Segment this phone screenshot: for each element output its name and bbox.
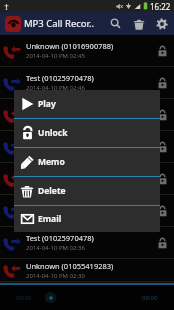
staticText: Unknown (01016900788) xyxy=(26,41,114,51)
staticText: 2014-04-10 PM 02:45 xyxy=(26,52,85,60)
button[interactable]: Delete xyxy=(14,177,160,205)
staticText: 2014-04-10 PM 02:45 xyxy=(26,116,85,124)
staticText: Email xyxy=(38,213,62,225)
staticText: Test (01025970478) xyxy=(26,201,94,211)
button[interactable]: Unlock xyxy=(14,119,160,147)
staticText: MP3 Call Recor.. xyxy=(24,17,95,30)
button[interactable]: Settings xyxy=(150,12,173,35)
staticText: Test (01025970478) xyxy=(26,233,94,243)
staticText: Unlock xyxy=(38,127,68,139)
staticText: 2014-04-10 PM 02:30 xyxy=(26,272,85,280)
button[interactable]: Test (01025970478) xyxy=(0,227,174,259)
staticText: 00:00 xyxy=(16,294,32,302)
button[interactable]: Play xyxy=(45,292,56,303)
button[interactable]: Test (01025970478) xyxy=(0,131,174,163)
button[interactable]: Unknown (01016900788) xyxy=(0,163,174,195)
staticText: Delete xyxy=(38,185,66,197)
staticText: 2014-04-10 PM 02:42 xyxy=(26,180,85,188)
button[interactable]: Unknown (01055419283) xyxy=(0,259,174,282)
staticText: Unknown (01016900788) xyxy=(26,169,114,179)
button[interactable]: Search xyxy=(104,12,127,35)
staticText: 2014-04-10 PM 02:46 xyxy=(26,84,85,92)
button[interactable]: Memo xyxy=(14,148,160,176)
staticText: 2014-04-10 PM 02:40 xyxy=(26,212,85,220)
button[interactable]: Test (01025970478) xyxy=(0,67,174,99)
button[interactable]: Email xyxy=(14,206,160,232)
staticText: Test (01025970478) xyxy=(26,137,94,147)
button[interactable]: Unknown (01016900788) xyxy=(0,99,174,131)
staticText: Memo xyxy=(38,156,65,168)
button[interactable]: Unknown (01016900788) xyxy=(0,35,174,67)
button[interactable]: Test (01025970478) xyxy=(0,195,174,227)
staticText: 16:22 xyxy=(150,1,171,12)
staticText: Unknown (01016900788) xyxy=(26,105,114,115)
staticText: Play xyxy=(38,98,56,110)
staticText: Test (01025970478) xyxy=(26,73,94,83)
button[interactable]: Delete xyxy=(127,12,150,35)
button[interactable]: Play xyxy=(14,90,160,118)
staticText: 00:00 xyxy=(142,294,158,302)
staticText: Unknown (01055419283) xyxy=(26,261,114,271)
staticText: 2014-04-10 PM 02:36 xyxy=(26,244,85,252)
